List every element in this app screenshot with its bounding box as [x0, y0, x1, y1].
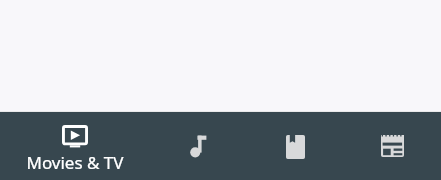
button[interactable]: Books	[247, 112, 344, 180]
button[interactable]: Newsstand	[344, 112, 441, 180]
staticText: Movies & TV	[26, 151, 124, 174]
button[interactable]: Music	[150, 112, 247, 180]
button[interactable]: Movies & TV	[0, 112, 150, 180]
